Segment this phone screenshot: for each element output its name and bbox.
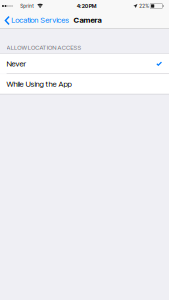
staticText: Location Services: [11, 15, 69, 25]
button[interactable]: Never: [0, 54, 169, 74]
staticText: 4:20 PM: [77, 3, 97, 9]
staticText: Never: [7, 59, 27, 68]
staticText: 22%: [139, 3, 149, 9]
button[interactable]: Location Services: [0, 12, 71, 29]
staticText: ALLOW LOCATION ACCESS: [7, 44, 82, 51]
button[interactable]: While Using the App: [0, 74, 169, 94]
staticText: Camera: [74, 15, 102, 25]
staticText: Sprint: [20, 3, 34, 9]
staticText: While Using the App: [7, 79, 72, 89]
